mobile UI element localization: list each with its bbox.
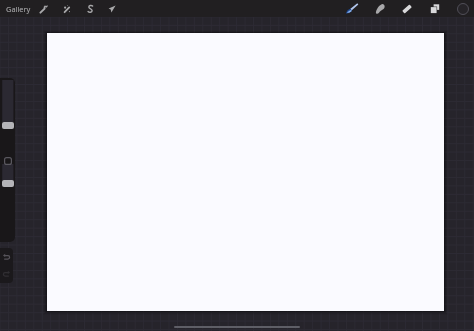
button[interactable]: Layers [426, 0, 444, 17]
button[interactable]: Gallery [4, 0, 33, 17]
button[interactable]: Brush size [2, 122, 14, 129]
button[interactable]: Redo [2, 269, 11, 278]
button[interactable]: Modify [4, 157, 12, 165]
button[interactable]: Transform [103, 0, 121, 17]
staticText: Gallery [6, 4, 31, 14]
button[interactable]: Adjustments [35, 0, 53, 17]
button[interactable]: Eraser [398, 0, 416, 17]
button[interactable]: Opacity [2, 180, 14, 187]
button[interactable]: Brush [343, 0, 361, 17]
button[interactable]: Selection [81, 0, 99, 17]
button[interactable]: Colour [454, 0, 472, 17]
button[interactable]: Undo [2, 252, 11, 261]
button[interactable]: Magic [58, 0, 76, 17]
button[interactable]: Smudge [371, 0, 389, 17]
